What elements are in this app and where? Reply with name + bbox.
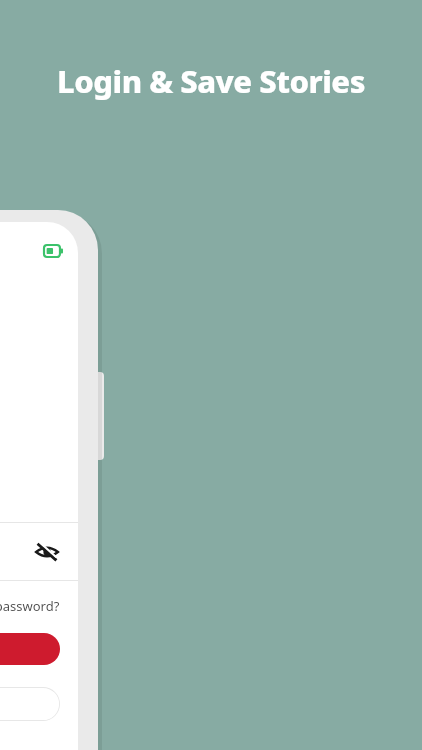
button[interactable]	[0, 633, 60, 665]
button[interactable]	[0, 687, 60, 721]
staticText: Forgot password?	[0, 597, 60, 615]
button[interactable]: Toggle password visibility	[34, 539, 60, 565]
button[interactable]: Forgot password?	[0, 594, 60, 618]
other: Battery	[44, 245, 63, 257]
button[interactable]: Toggle password visibility	[0, 523, 78, 580]
staticText: Login & Save Stories	[0, 60, 422, 750]
